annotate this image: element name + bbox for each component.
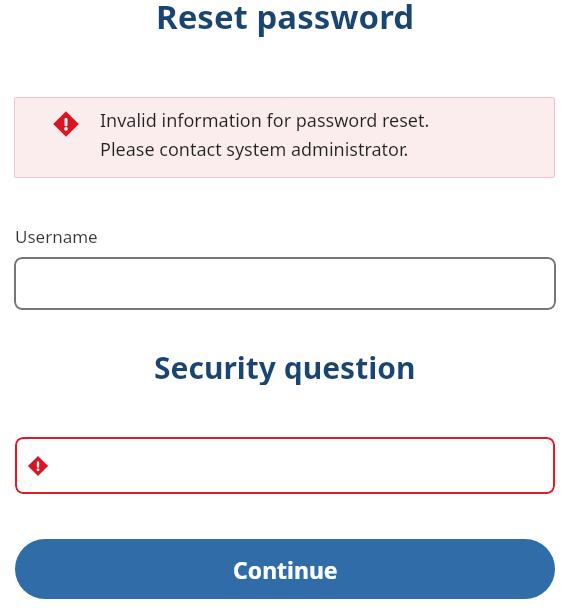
other: Field error: [27, 455, 49, 477]
staticText: Invalid information for password reset.: [100, 108, 430, 133]
staticText: Username: [15, 225, 98, 248]
button[interactable]: Continue: [15, 539, 555, 599]
staticText: Continue: [233, 554, 338, 585]
staticText: Please contact system administrator.: [100, 137, 409, 162]
staticText: Reset password: [156, 0, 415, 38]
staticText: Security question: [154, 347, 416, 385]
other: Error: [52, 110, 80, 138]
button[interactable]: Field error: [15, 437, 555, 494]
button[interactable]: [14, 257, 556, 310]
